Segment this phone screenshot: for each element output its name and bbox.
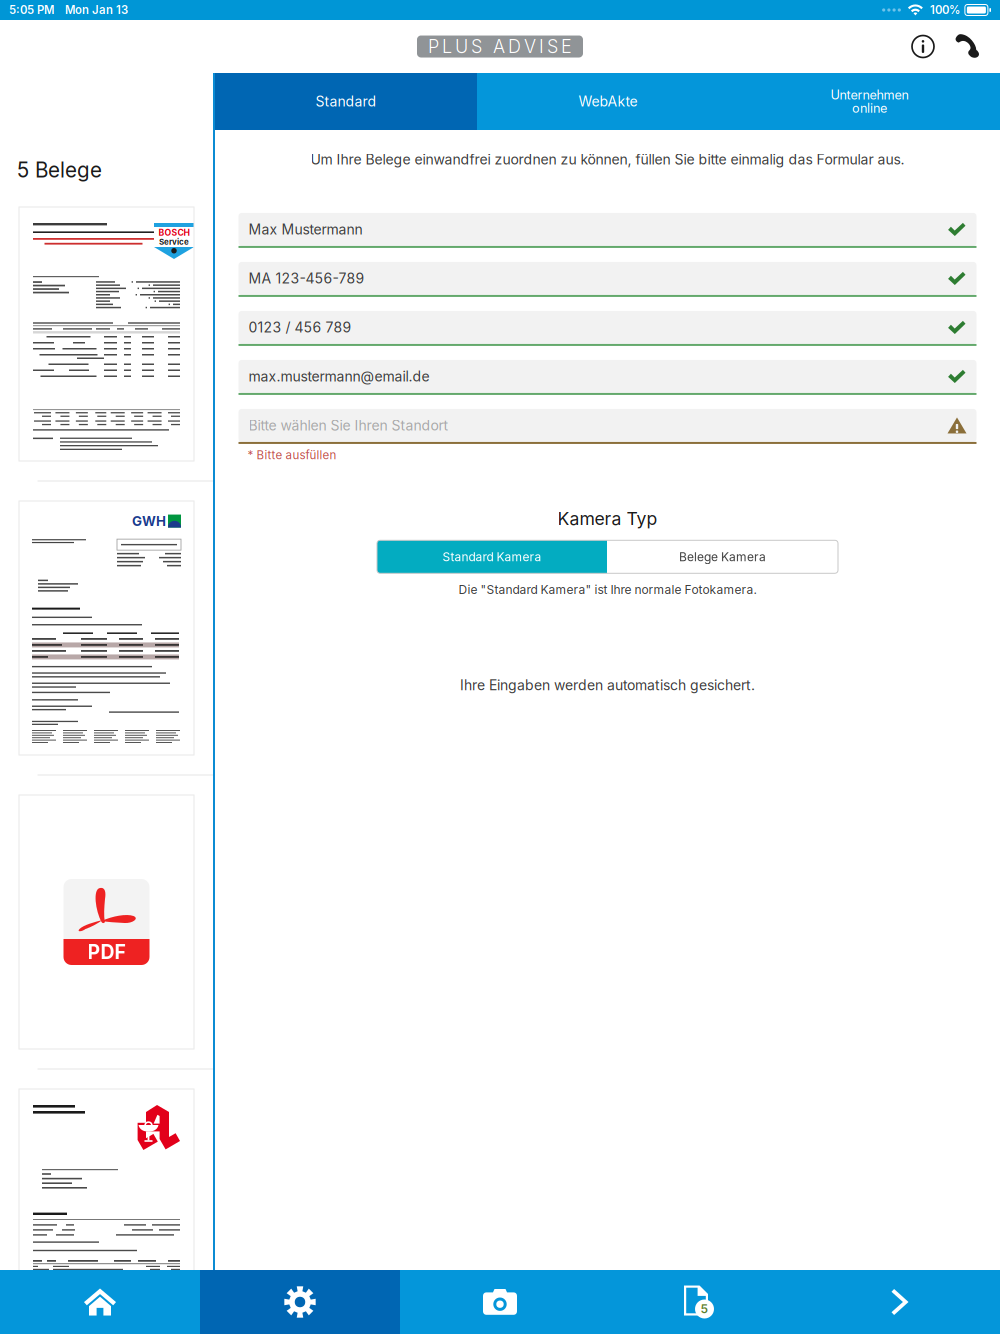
staticText: Belege Kamera (679, 549, 766, 564)
staticText: * Bitte ausfüllen (247, 448, 336, 462)
button[interactable]: Unternehmen (739, 73, 1000, 130)
staticText: Service (159, 237, 189, 247)
staticText: PDF (87, 940, 125, 964)
button[interactable]: Home (0, 1270, 200, 1334)
button[interactable]: Standard (215, 73, 477, 130)
staticText: MA 123-456-789 (248, 270, 364, 287)
staticText: L (442, 36, 452, 57)
staticText: WebAkte (578, 93, 637, 110)
button[interactable]: Belege Kamera (607, 540, 838, 573)
staticText: I (539, 36, 544, 57)
staticText: D (508, 36, 521, 57)
staticText: BOSCH (158, 227, 189, 238)
staticText: S (547, 36, 558, 57)
staticText: V (524, 36, 536, 57)
button[interactable]: max.mustermann@email.de (238, 360, 976, 395)
staticText: 5:05 PM (9, 3, 54, 17)
button[interactable]: WebAkte (477, 73, 739, 130)
staticText: Kamera Typ (557, 508, 657, 529)
button[interactable]: Standard Kamera (377, 540, 607, 573)
staticText: GWH (132, 513, 166, 529)
staticText: Standard Kamera (442, 549, 541, 564)
button[interactable]: Call (945, 20, 989, 72)
staticText: max.mustermann@email.de (248, 368, 429, 385)
staticText: P (428, 36, 439, 57)
staticText: Mon Jan 13 (65, 3, 128, 17)
button[interactable]: Info (901, 20, 945, 72)
button[interactable]: Documents, 5 new (600, 1270, 800, 1334)
button[interactable]: Camera (400, 1270, 600, 1334)
staticText: 5 (700, 1302, 708, 1316)
button[interactable]: Next (800, 1270, 1000, 1334)
staticText: Die "Standard Kamera" ist Ihre normale F… (458, 582, 756, 597)
staticText: U (455, 36, 468, 57)
staticText: 5 Belege (17, 157, 102, 182)
button[interactable]: Settings (200, 1270, 400, 1334)
staticText: A (493, 36, 505, 57)
button[interactable]: Max Mustermann (238, 213, 976, 248)
staticText: E (561, 36, 572, 57)
staticText: S (471, 36, 482, 57)
button[interactable]: PDF (19, 795, 194, 1049)
staticText: Unternehmen (830, 87, 908, 102)
button[interactable]: MA 123-456-789 (238, 262, 976, 297)
button[interactable]: 0123 / 456 789 (238, 311, 976, 346)
button[interactable]: Bitte wählen Sie Ihren Standort (238, 409, 976, 444)
staticText: Standard (315, 93, 376, 110)
staticText: Max Mustermann (248, 221, 362, 238)
staticText: Um Ihre Belege einwandfrei zuordnen zu k… (310, 151, 904, 168)
button[interactable]: BOSCH (19, 207, 194, 461)
button[interactable]: GWH (19, 501, 194, 755)
button[interactable] (19, 1089, 194, 1334)
staticText: Bitte wählen Sie Ihren Standort (248, 417, 448, 434)
staticText: Ihre Eingaben werden automatisch gesiche… (460, 677, 755, 694)
staticText: online (852, 100, 887, 116)
staticText: 0123 / 456 789 (248, 319, 351, 336)
staticText: 100% (930, 3, 960, 17)
